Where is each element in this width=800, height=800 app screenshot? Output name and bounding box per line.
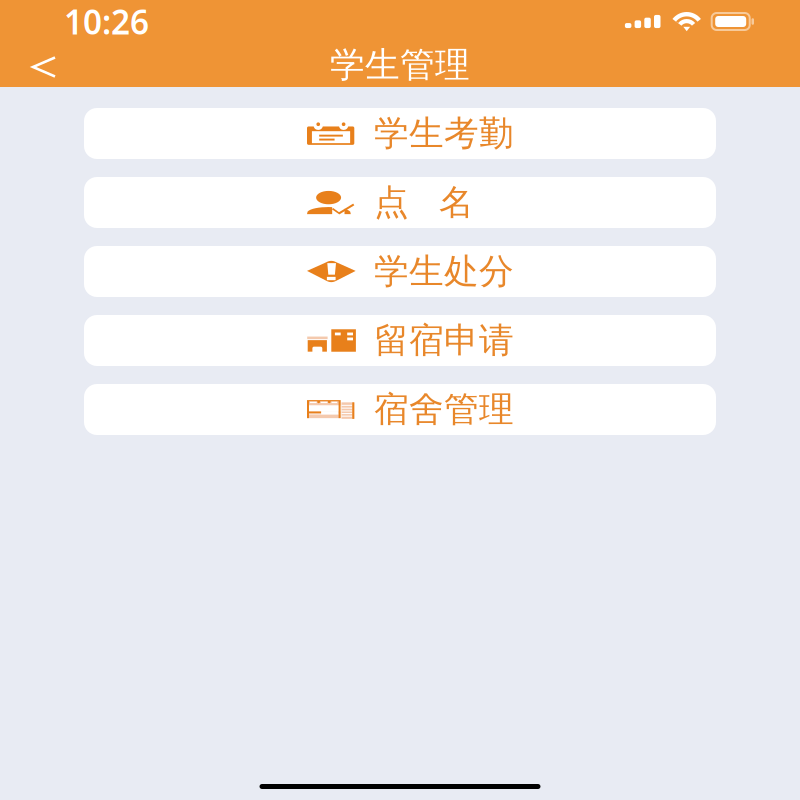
button[interactable]: 学生处分 xyxy=(84,246,716,297)
staticText: 宿舍管理 xyxy=(374,388,514,431)
staticText: 学生处分 xyxy=(374,250,514,293)
staticText: 学生考勤 xyxy=(374,112,514,155)
button[interactable]: Back xyxy=(0,44,73,85)
staticText: 点 名 xyxy=(374,181,474,224)
staticText: 10:26 xyxy=(64,0,149,44)
button[interactable]: 留宿申请 xyxy=(84,315,716,366)
button[interactable]: 宿舍管理 xyxy=(84,384,716,435)
button[interactable]: 点 名 xyxy=(84,177,716,228)
staticText: 学生管理 xyxy=(330,44,470,86)
button[interactable]: 学生考勤 xyxy=(84,108,716,159)
staticText: 留宿申请 xyxy=(374,319,514,362)
